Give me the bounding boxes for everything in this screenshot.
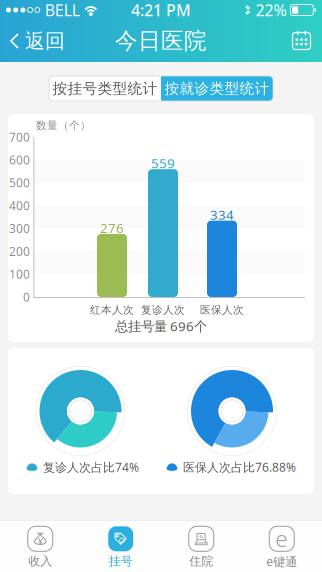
- staticText: ¥: [38, 535, 43, 547]
- staticText: 医保人次占比76.88%: [183, 459, 296, 475]
- staticText: 医保人次: [200, 303, 244, 316]
- staticText: 559: [151, 154, 175, 172]
- staticText: 收入: [28, 554, 52, 569]
- staticText: 按就诊类型统计: [164, 79, 269, 97]
- staticText: 334: [210, 206, 234, 223]
- staticText: 500: [9, 175, 30, 191]
- button[interactable]: Calendar: [282, 20, 322, 62]
- staticText: 挂号: [109, 554, 133, 569]
- staticText: 总挂号量 696个: [115, 317, 207, 335]
- staticText: 400: [9, 198, 30, 213]
- staticText: 200: [9, 243, 30, 259]
- staticText: 300: [9, 220, 30, 236]
- staticText: 0: [23, 289, 30, 305]
- button[interactable]: ¥: [0, 520, 80, 572]
- button[interactable]: 挂号: [80, 520, 161, 572]
- staticText: 复诊人次: [141, 303, 185, 316]
- staticText: 600: [9, 152, 30, 168]
- staticText: 按挂号类型统计: [52, 79, 157, 97]
- staticText: 数量（个）: [36, 119, 91, 132]
- button[interactable]: 按挂号类型统计: [49, 76, 161, 101]
- staticText: e: [275, 523, 288, 553]
- staticText: e键通: [266, 553, 297, 569]
- staticText: 今日医院: [115, 27, 207, 55]
- staticText: BELL: [45, 0, 80, 21]
- button[interactable]: 返回: [0, 20, 73, 62]
- button[interactable]: 住院: [161, 520, 241, 572]
- staticText: 住院: [189, 554, 213, 569]
- staticText: 22%: [255, 0, 286, 21]
- staticText: 返回: [25, 29, 65, 53]
- staticText: 100: [9, 266, 30, 282]
- staticText: 复诊人次占比74%: [43, 459, 139, 475]
- button[interactable]: e: [241, 520, 322, 572]
- staticText: 4:21 PM: [131, 0, 191, 21]
- button[interactable]: 按就诊类型统计: [161, 76, 273, 101]
- staticText: 红本人次: [90, 303, 134, 316]
- staticText: 700: [9, 129, 30, 145]
- staticText: 276: [100, 219, 124, 237]
